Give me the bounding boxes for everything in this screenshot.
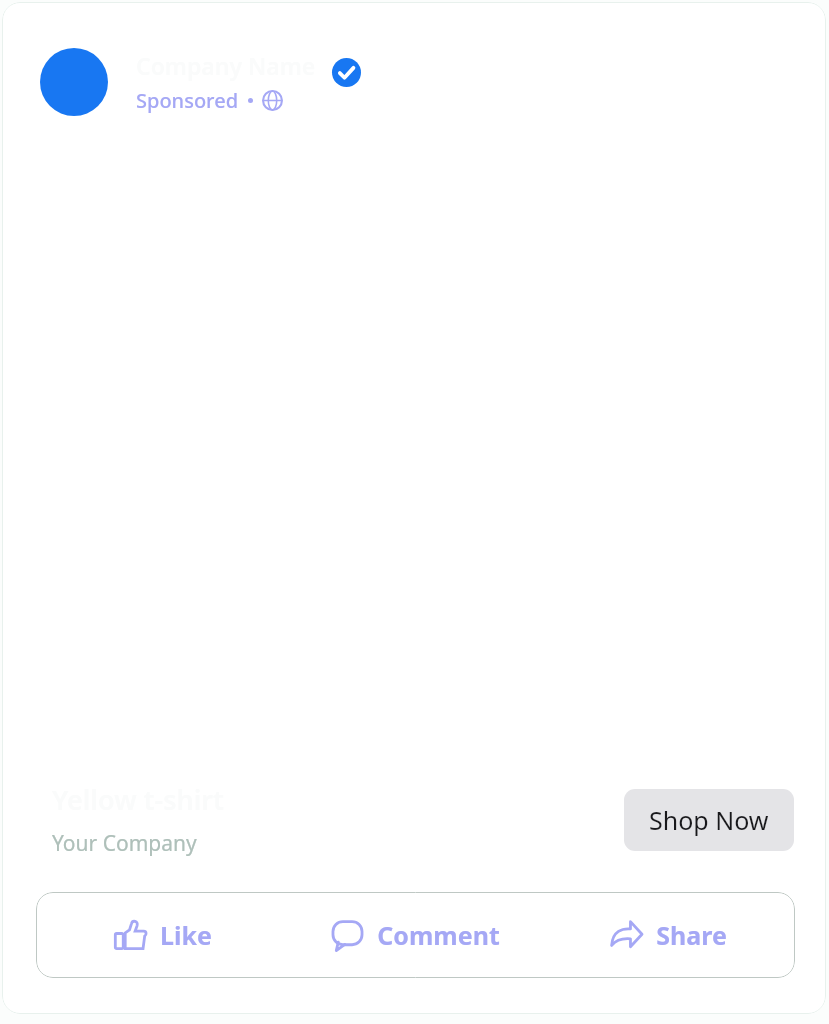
staticText: Sponsored	[136, 87, 239, 114]
button[interactable]: Like	[36, 892, 289, 978]
button[interactable]: Shop Now	[624, 789, 794, 851]
staticText: Comment	[377, 918, 500, 952]
other: Verified	[332, 58, 361, 87]
button[interactable]: Company Name	[40, 48, 802, 116]
staticText: Shop Now	[649, 803, 769, 837]
other: Public audience	[262, 90, 283, 111]
button[interactable]: Comment	[289, 892, 542, 978]
staticText: Your Company	[52, 829, 197, 858]
staticText: Share	[656, 918, 727, 952]
staticText: Like	[160, 918, 212, 952]
button[interactable]: Share	[542, 892, 795, 978]
